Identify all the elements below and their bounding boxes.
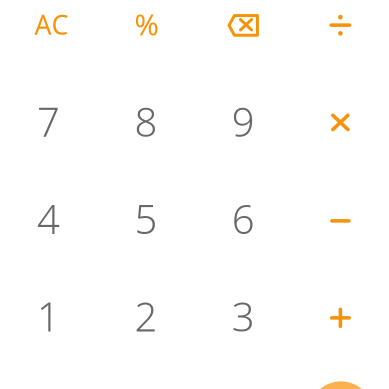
button[interactable]: % xyxy=(97,0,194,73)
button[interactable]: Divide xyxy=(292,0,389,73)
button[interactable]: Delete xyxy=(195,0,292,73)
staticText: 2 xyxy=(134,289,157,342)
button[interactable]: 7 xyxy=(0,73,97,170)
button[interactable]: Multiply xyxy=(292,73,389,170)
staticText: 8 xyxy=(134,95,157,148)
button[interactable]: 2 xyxy=(97,267,194,364)
staticText: 3 xyxy=(232,289,255,342)
button[interactable]: Plus xyxy=(292,267,389,364)
staticText: 5 xyxy=(134,192,157,245)
button[interactable]: 9 xyxy=(195,73,292,170)
button[interactable]: 1 xyxy=(0,267,97,364)
button[interactable]: 3 xyxy=(195,267,292,364)
button[interactable]: 6 xyxy=(195,170,292,267)
staticText: 6 xyxy=(232,192,255,245)
button[interactable]: 4 xyxy=(0,170,97,267)
staticText: 9 xyxy=(232,95,255,148)
staticText: AC xyxy=(35,7,69,42)
staticText: 4 xyxy=(37,192,60,245)
staticText: % xyxy=(134,4,158,43)
button[interactable]: 8 xyxy=(97,73,194,170)
button[interactable]: Minus xyxy=(292,170,389,267)
button[interactable]: Equals xyxy=(292,365,389,389)
staticText: 1 xyxy=(37,289,60,342)
button[interactable]: 5 xyxy=(97,170,194,267)
staticText: 7 xyxy=(37,95,60,148)
button[interactable]: AC xyxy=(0,0,97,73)
